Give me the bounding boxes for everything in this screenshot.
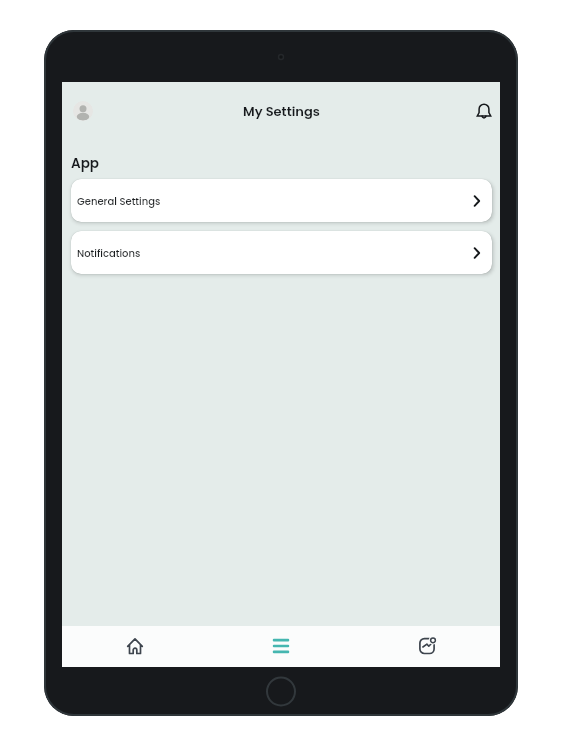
button[interactable] [73, 101, 93, 121]
button[interactable]: Notifications [71, 231, 492, 274]
button[interactable] [470, 98, 498, 126]
button[interactable] [62, 626, 208, 667]
button[interactable] [208, 626, 354, 667]
staticText: App [71, 154, 99, 173]
button[interactable]: General Settings [71, 179, 492, 222]
button[interactable] [354, 626, 500, 667]
staticText: Notifications [77, 246, 141, 260]
staticText: My Settings [243, 102, 320, 120]
staticText: General Settings [77, 194, 161, 208]
